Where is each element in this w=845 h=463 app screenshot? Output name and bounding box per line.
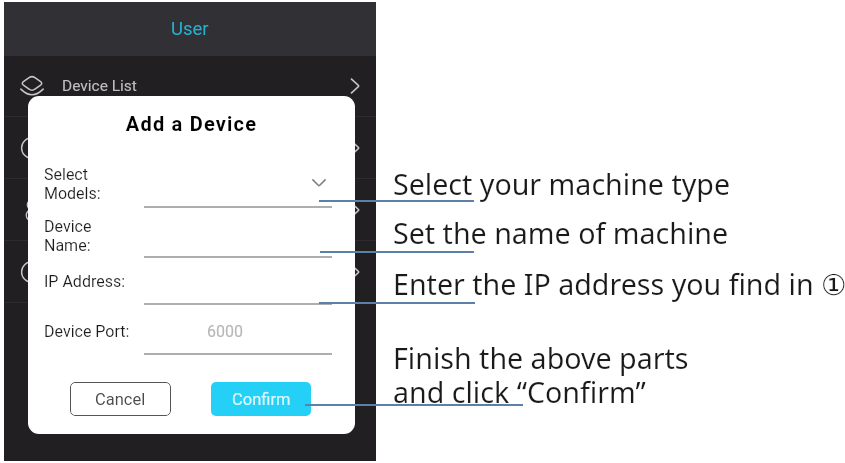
staticText: Enter the IP address you find in ① bbox=[393, 264, 845, 303]
staticText: 6000 bbox=[207, 322, 243, 341]
staticText: Device List bbox=[62, 77, 137, 95]
button[interactable]: Device List bbox=[4, 55, 376, 117]
staticText: IP Address: bbox=[44, 272, 126, 291]
staticText: Confirm bbox=[232, 390, 291, 409]
button[interactable]: Settings bbox=[4, 179, 376, 241]
staticText: Cancel bbox=[95, 390, 146, 409]
button[interactable]: About bbox=[4, 241, 376, 303]
staticText: Add a Device bbox=[28, 112, 355, 135]
staticText: About bbox=[62, 263, 104, 281]
staticText: Select Models: bbox=[44, 165, 101, 203]
other: Open Device List bbox=[345, 76, 365, 96]
button[interactable]: Cancel bbox=[70, 382, 171, 416]
button[interactable]: Select model bbox=[308, 171, 330, 193]
staticText: Device Port: bbox=[44, 322, 130, 341]
staticText: Set the name of machine bbox=[393, 213, 729, 252]
other: Open About bbox=[345, 262, 365, 282]
button[interactable]: Account bbox=[4, 117, 376, 179]
other: Open Settings bbox=[345, 200, 365, 220]
staticText: Finish the above parts and click “Confir… bbox=[393, 338, 689, 412]
staticText: User bbox=[171, 18, 209, 40]
staticText: Select your machine type bbox=[393, 164, 731, 203]
button[interactable]: Confirm bbox=[211, 382, 311, 416]
other: Open Account bbox=[345, 138, 365, 158]
staticText: Device Name: bbox=[44, 217, 92, 255]
